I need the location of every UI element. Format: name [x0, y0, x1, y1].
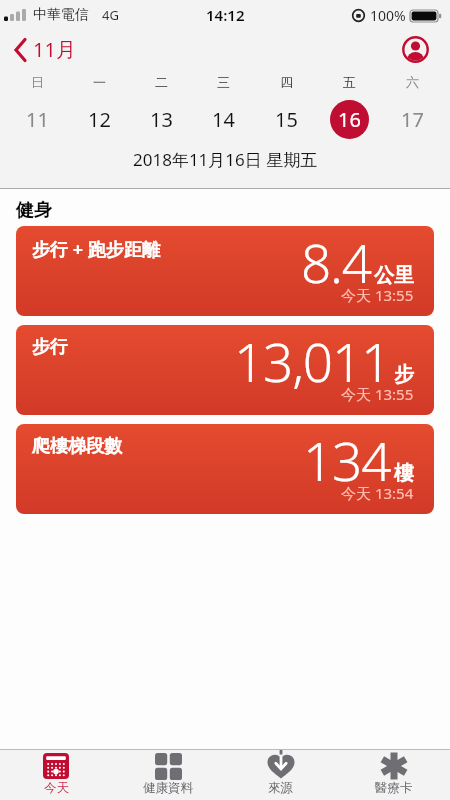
button[interactable]: 16 [330, 100, 369, 139]
button[interactable]: 11月 [14, 36, 76, 63]
staticText: 16 [338, 106, 361, 133]
button[interactable]: 步行 + 跑步距離 [16, 226, 434, 316]
staticText: 100% [370, 6, 406, 25]
staticText: 11月 [33, 36, 76, 63]
button[interactable]: 步行 [16, 325, 434, 415]
button[interactable] [402, 36, 429, 63]
staticText: 公里 [374, 263, 414, 288]
button[interactable]: 來源 [224, 750, 337, 800]
staticText: 健康資料 [143, 780, 193, 796]
button[interactable]: 14 [204, 100, 243, 139]
staticText: 17 [401, 106, 424, 133]
button[interactable]: 17 [393, 100, 432, 139]
button[interactable]: 今天 [0, 750, 112, 800]
button[interactable]: 爬樓梯段數 [16, 424, 434, 514]
staticText: 五 [343, 74, 356, 90]
staticText: 來源 [268, 780, 293, 796]
staticText: 14 [212, 106, 235, 133]
staticText: 13,011 [234, 325, 391, 397]
staticText: 2018年11月16日 星期五 [133, 148, 318, 171]
staticText: 134 [303, 424, 391, 496]
button[interactable]: 13 [142, 100, 181, 139]
button[interactable]: 健康資料 [112, 750, 224, 800]
staticText: 四 [280, 74, 293, 90]
staticText: 8.4 [301, 226, 371, 298]
staticText: 三 [217, 74, 230, 90]
staticText: 今天 13:55 [341, 384, 414, 404]
staticText: 12 [88, 106, 111, 133]
staticText: 健身 [16, 199, 52, 222]
staticText: 4G [102, 6, 119, 24]
staticText: 13 [150, 106, 173, 133]
staticText: 15 [275, 106, 298, 133]
staticText: 中華電信 [33, 6, 89, 24]
staticText: 樓 [394, 461, 414, 486]
staticText: 今天 [44, 780, 69, 796]
staticText: 爬樓梯段數 [32, 435, 122, 458]
button[interactable]: 11 [18, 100, 57, 139]
staticText: 六 [406, 74, 419, 90]
button[interactable]: 15 [267, 100, 306, 139]
staticText: 醫療卡 [375, 780, 413, 796]
staticText: 日 [31, 74, 44, 90]
staticText: 11 [26, 106, 49, 133]
staticText: 今天 13:54 [341, 483, 414, 503]
staticText: 今天 13:55 [341, 285, 414, 305]
button[interactable]: 12 [80, 100, 119, 139]
staticText: 步行 [32, 336, 68, 359]
button[interactable]: 醫療卡 [337, 750, 450, 800]
staticText: 步行 + 跑步距離 [32, 237, 160, 262]
staticText: 一 [93, 74, 106, 90]
staticText: 二 [155, 74, 168, 90]
staticText: 步 [394, 362, 414, 387]
staticText: 14:12 [206, 5, 245, 25]
